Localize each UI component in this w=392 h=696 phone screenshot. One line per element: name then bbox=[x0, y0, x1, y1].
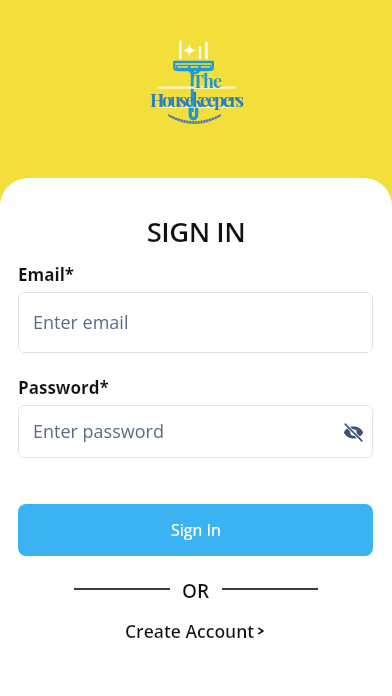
button[interactable]: Toggle password visibility bbox=[340, 419, 366, 445]
button[interactable]: Enter email bbox=[18, 292, 373, 353]
staticText: OR bbox=[182, 578, 210, 600]
staticText: Housekeepers bbox=[150, 88, 243, 112]
staticText: Enter password bbox=[33, 419, 164, 444]
staticText: Enter email bbox=[33, 310, 129, 335]
staticText: The bbox=[192, 69, 222, 93]
staticText: Password* bbox=[18, 376, 109, 399]
button[interactable]: Enter password bbox=[18, 405, 373, 458]
staticText: Email* bbox=[18, 263, 75, 286]
staticText: SIGN IN bbox=[0, 213, 392, 250]
button[interactable]: Sign In bbox=[18, 504, 373, 556]
staticText: Sign In bbox=[171, 519, 221, 541]
button[interactable]: Create Account bbox=[0, 619, 392, 643]
staticText: Create Account bbox=[125, 619, 255, 643]
